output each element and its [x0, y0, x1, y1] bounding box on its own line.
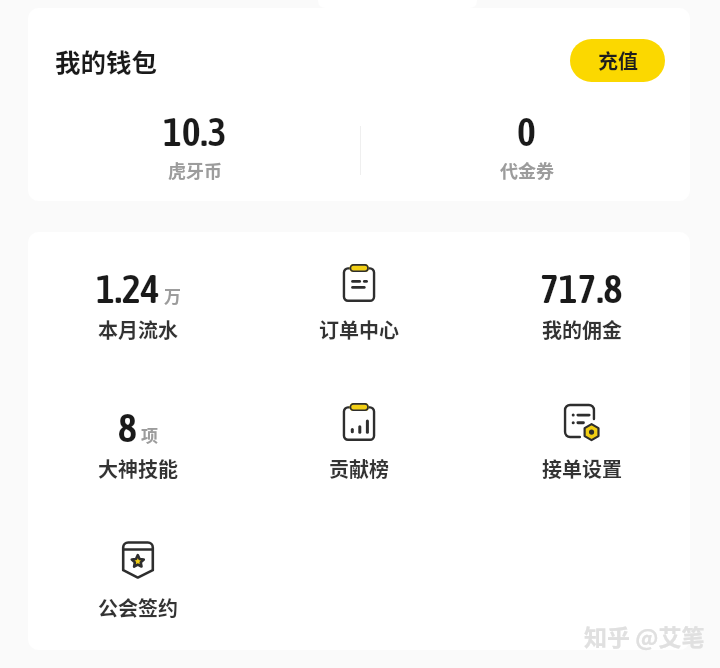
- button[interactable]: 贡献榜: [248, 371, 469, 510]
- button[interactable]: 接单设置: [469, 371, 690, 510]
- staticText: 8: [118, 405, 137, 451]
- staticText: 0: [517, 109, 536, 155]
- staticText: 10.3: [163, 109, 227, 155]
- staticText: 代金券: [500, 157, 554, 183]
- button[interactable]: 1.24: [28, 232, 248, 371]
- staticText: 我的钱包: [55, 42, 158, 79]
- button[interactable]: 717.8: [469, 232, 690, 371]
- staticText: 知乎 @艾笔: [584, 619, 705, 652]
- staticText: 1.24: [96, 266, 160, 312]
- staticText: 本月流水: [98, 315, 178, 344]
- button[interactable]: 8: [28, 371, 248, 510]
- staticText: 接单设置: [542, 454, 622, 483]
- staticText: 717.8: [540, 266, 623, 312]
- button[interactable]: 0: [359, 108, 690, 190]
- button[interactable]: 订单中心: [248, 232, 469, 371]
- button[interactable]: 公会签约: [28, 510, 248, 649]
- staticText: 大神技能: [98, 454, 178, 483]
- staticText: 虎牙币: [168, 157, 222, 183]
- button[interactable]: 10.3: [28, 108, 359, 190]
- staticText: 公会签约: [98, 593, 178, 622]
- staticText: 项: [141, 422, 158, 447]
- staticText: 万: [164, 283, 181, 308]
- staticText: 充值: [598, 46, 638, 75]
- staticText: 贡献榜: [329, 454, 389, 483]
- staticText: 我的佣金: [542, 315, 622, 344]
- staticText: 订单中心: [319, 315, 399, 344]
- button[interactable]: 充值: [570, 39, 665, 82]
